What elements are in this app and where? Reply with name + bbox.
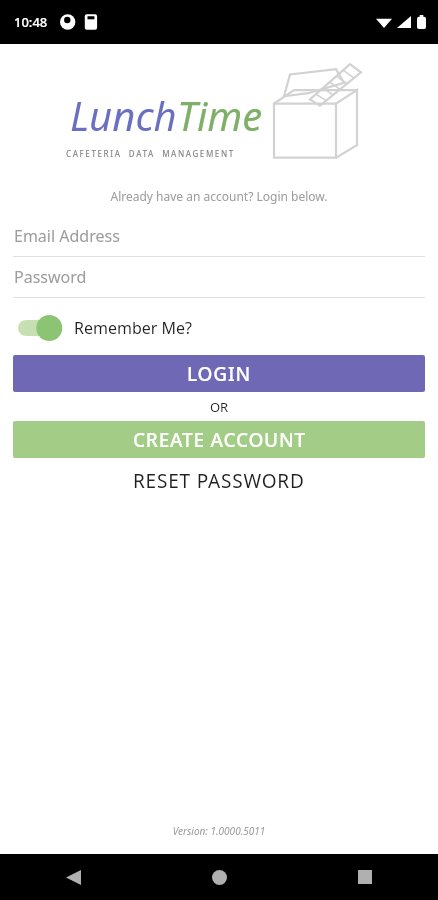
staticText: Version: 1.0000.5011: [0, 824, 438, 838]
staticText: Remember Me?: [74, 317, 193, 339]
button[interactable]: CREATE ACCOUNT: [13, 421, 425, 458]
staticText: Lunch: [70, 88, 177, 142]
staticText: RESET PASSWORD: [133, 468, 305, 494]
staticText: OR: [0, 398, 438, 416]
staticText: Already have an account? Login below.: [0, 188, 438, 204]
button[interactable]: Email Address: [0, 216, 438, 257]
staticText: CREATE ACCOUNT: [133, 427, 306, 453]
button[interactable]: RESET PASSWORD: [0, 464, 438, 498]
button[interactable]: LOGIN: [13, 355, 425, 392]
staticText: Time: [177, 88, 263, 142]
button[interactable]: Recent apps: [292, 854, 438, 900]
staticText: 10:48: [14, 13, 48, 31]
staticText: LOGIN: [187, 361, 251, 387]
button[interactable]: Back: [0, 854, 146, 900]
button[interactable]: Password: [0, 257, 438, 298]
button[interactable]: Remember Me?: [18, 315, 438, 341]
staticText: CAFETERIA DATA MANAGEMENT: [66, 148, 235, 159]
button[interactable]: Home: [146, 854, 292, 900]
staticText: Password: [14, 266, 87, 288]
staticText: Email Address: [14, 225, 120, 247]
